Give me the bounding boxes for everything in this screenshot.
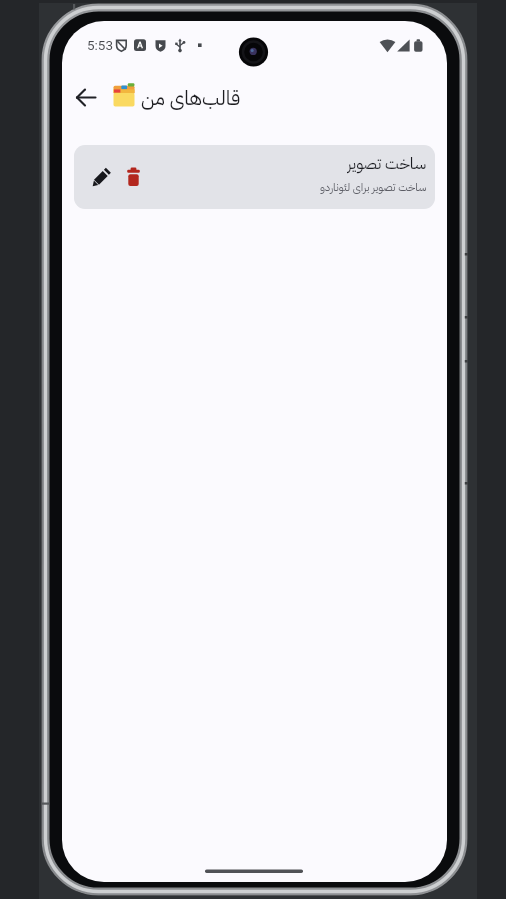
- staticText: ساخت تصویر برای لئوناردو: [320, 179, 427, 195]
- button[interactable]: [68, 83, 106, 113]
- staticText: 5:53: [87, 37, 114, 53]
- staticText: قالب‌های من: [141, 83, 241, 111]
- button[interactable]: [74, 145, 435, 209]
- button[interactable]: [88, 163, 114, 190]
- button[interactable]: [122, 163, 144, 190]
- staticText: ساخت تصویر: [347, 152, 427, 175]
